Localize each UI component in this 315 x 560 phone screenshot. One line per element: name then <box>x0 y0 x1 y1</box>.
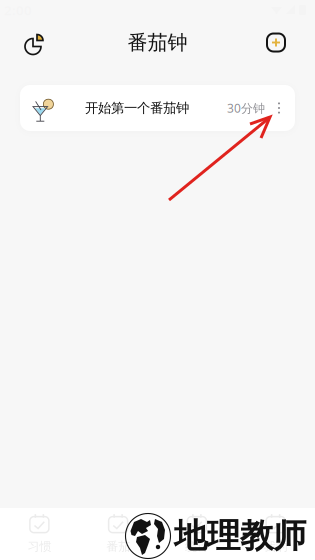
staticText: 地理教师 <box>174 515 306 556</box>
button[interactable]: 开始第一个番茄钟 <box>20 85 295 131</box>
staticText: 开始第一个番茄钟 <box>85 100 189 116</box>
staticText: 番茄钟 <box>127 30 187 55</box>
staticText: 30分钟 <box>227 100 265 116</box>
button[interactable]: 我的 <box>236 508 315 560</box>
button[interactable]: 番茄 <box>79 508 158 560</box>
button[interactable]: Statistics <box>16 25 50 59</box>
button[interactable]: Add <box>259 25 293 59</box>
staticText: 番茄 <box>106 539 130 554</box>
staticText: 习惯 <box>27 539 51 554</box>
button[interactable]: 统计 <box>157 508 236 560</box>
staticText: 统计 <box>185 539 209 554</box>
staticText: 我的 <box>264 539 288 554</box>
button[interactable]: 习惯 <box>0 508 79 560</box>
